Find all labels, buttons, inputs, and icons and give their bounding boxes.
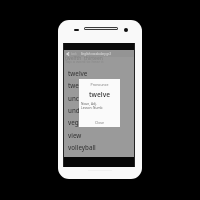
staticText: vegetable [68,118,98,126]
staticText: English vocabulary gr.3 [81,52,112,56]
staticText: Lesson: Numb [81,106,103,110]
button[interactable]: volleyball [64,141,134,153]
button[interactable]: uncle [64,92,134,104]
staticText: Tap a word to hear it [65,59,104,64]
staticText: Close [95,120,105,125]
button[interactable]: under [64,104,134,116]
staticText: Pronounce [79,82,120,87]
staticText: under [68,106,86,114]
staticText: back [71,52,77,56]
staticText: Noun, Adj. [81,102,97,106]
button[interactable]: view [64,129,134,141]
staticText: twelve [68,69,88,77]
button[interactable]: vegetable [64,116,134,128]
button[interactable]: Close [94,120,106,125]
staticText: twenty [68,81,89,89]
staticText: view [68,131,82,139]
staticText: volleyball [68,143,96,151]
button[interactable]: Navigate up [64,50,71,57]
staticText: twelve [79,90,120,99]
staticText: uncle [68,94,85,102]
staticText: twelfth thirteen [65,55,103,62]
button[interactable]: twenty [64,79,134,91]
button[interactable]: twelve [64,67,134,79]
